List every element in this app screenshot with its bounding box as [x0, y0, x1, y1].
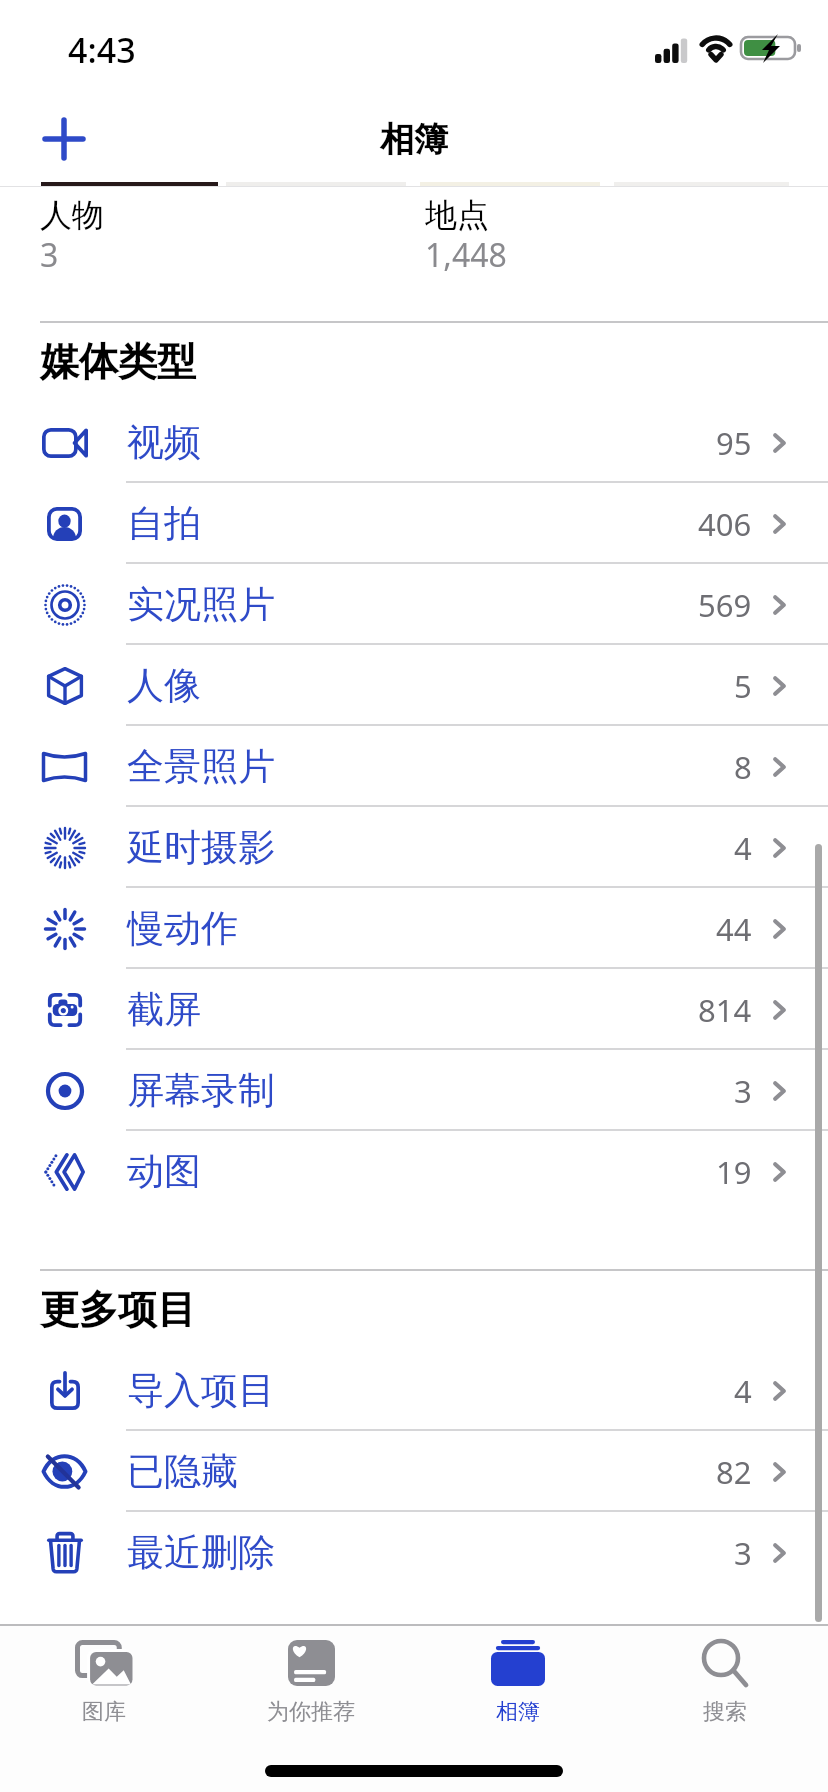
staticText: 全景照片 [127, 743, 275, 790]
staticText: 人物 [40, 195, 104, 235]
staticText: 视频 [127, 419, 201, 466]
staticText: 相簿 [496, 1698, 540, 1726]
button[interactable]: 导入项目 [0, 1350, 828, 1431]
staticText: 406 [698, 503, 752, 545]
staticText: 地点 [425, 195, 489, 235]
staticText: 814 [698, 989, 752, 1031]
staticText: 44 [716, 908, 752, 950]
staticText: 95 [716, 422, 752, 464]
button[interactable]: 人像 [0, 645, 828, 726]
button[interactable]: 搜索 [621, 1638, 828, 1742]
staticText: 8 [734, 746, 752, 788]
staticText: 动图 [127, 1148, 201, 1195]
staticText: 慢动作 [127, 905, 238, 952]
staticText: 4 [734, 827, 752, 869]
staticText: 屏幕录制 [127, 1067, 275, 1114]
staticText: 5 [734, 665, 752, 707]
button[interactable]: 延时摄影 [0, 807, 828, 888]
staticText: 媒体类型 [40, 337, 196, 386]
staticText: 569 [698, 584, 752, 626]
staticText: 3 [40, 233, 59, 277]
button[interactable]: 最近删除 [0, 1512, 828, 1593]
button[interactable]: 全景照片 [0, 726, 828, 807]
button[interactable]: 动图 [0, 1131, 828, 1212]
staticText: 82 [716, 1451, 752, 1493]
staticText: 图库 [82, 1698, 126, 1726]
staticText: 相簿 [380, 118, 448, 161]
staticText: 3 [734, 1070, 752, 1112]
staticText: 1,448 [425, 233, 507, 277]
staticText: 搜索 [703, 1698, 747, 1726]
button[interactable]: 屏幕录制 [0, 1050, 828, 1131]
button[interactable]: 截屏 [0, 969, 828, 1050]
button[interactable]: 相簿 [414, 1638, 621, 1742]
staticText: 为你推荐 [267, 1698, 355, 1726]
staticText: 自拍 [127, 500, 201, 547]
staticText: 人像 [127, 662, 201, 709]
staticText: 延时摄影 [127, 824, 275, 871]
staticText: 截屏 [127, 986, 201, 1033]
staticText: 更多项目 [40, 1285, 196, 1334]
button[interactable]: 实况照片 [0, 564, 828, 645]
button[interactable]: 已隐藏 [0, 1431, 828, 1512]
staticText: 最近删除 [127, 1529, 275, 1576]
staticText: 3 [734, 1532, 752, 1574]
button[interactable]: 慢动作 [0, 888, 828, 969]
button[interactable]: 图库 [0, 1638, 207, 1742]
button[interactable]: Add album [28, 98, 100, 180]
staticText: 4 [734, 1370, 752, 1412]
staticText: 实况照片 [127, 581, 275, 628]
button[interactable]: 视频 [0, 402, 828, 483]
staticText: 4:43 [68, 27, 136, 73]
staticText: 已隐藏 [127, 1448, 238, 1495]
staticText: 19 [716, 1151, 752, 1193]
button[interactable]: 为你推荐 [207, 1638, 414, 1742]
button[interactable]: 自拍 [0, 483, 828, 564]
staticText: 导入项目 [127, 1367, 275, 1414]
